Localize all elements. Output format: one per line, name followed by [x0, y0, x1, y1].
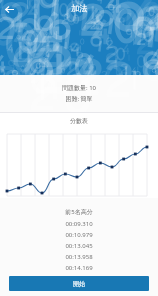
staticText: 00:09.310 [0, 220, 158, 228]
staticText: 00:14.169 [0, 264, 158, 272]
staticText: 困難: 簡單 [0, 95, 158, 103]
button[interactable]: 開始 [9, 276, 149, 291]
staticText: 前5名高分 [0, 208, 158, 216]
staticText: 加法 [71, 3, 87, 13]
staticText: 00:10.979 [0, 231, 158, 239]
staticText: 00:13.045 [0, 242, 158, 250]
staticText: 問題數量: 10 [0, 84, 158, 92]
staticText: 開始 [73, 280, 85, 288]
button[interactable]: Back [1, 1, 18, 18]
staticText: 00:13.958 [0, 253, 158, 261]
staticText: 分數表 [70, 117, 88, 125]
